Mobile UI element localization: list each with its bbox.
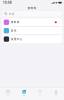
button[interactable]: 搜索: [0, 11, 64, 16]
button[interactable]: 播放: [16, 87, 32, 100]
button[interactable]: 资料库: [2, 18, 62, 26]
staticText: 10:08: [3, 1, 12, 4]
staticText: 资料库: [11, 21, 20, 24]
button[interactable]: 资料库: [0, 87, 16, 100]
button[interactable]: 搜索: [32, 87, 48, 100]
button[interactable]: 更多: [48, 87, 64, 100]
staticText: 搜索: [9, 12, 15, 15]
button[interactable]: 设置中心: [2, 35, 62, 43]
staticText: 设置中心: [11, 37, 23, 41]
staticText: 资料库: [6, 95, 9, 96]
staticText: 音乐: [11, 29, 17, 32]
staticText: 资料库: [27, 7, 36, 10]
button[interactable]: 音乐: [2, 27, 62, 35]
